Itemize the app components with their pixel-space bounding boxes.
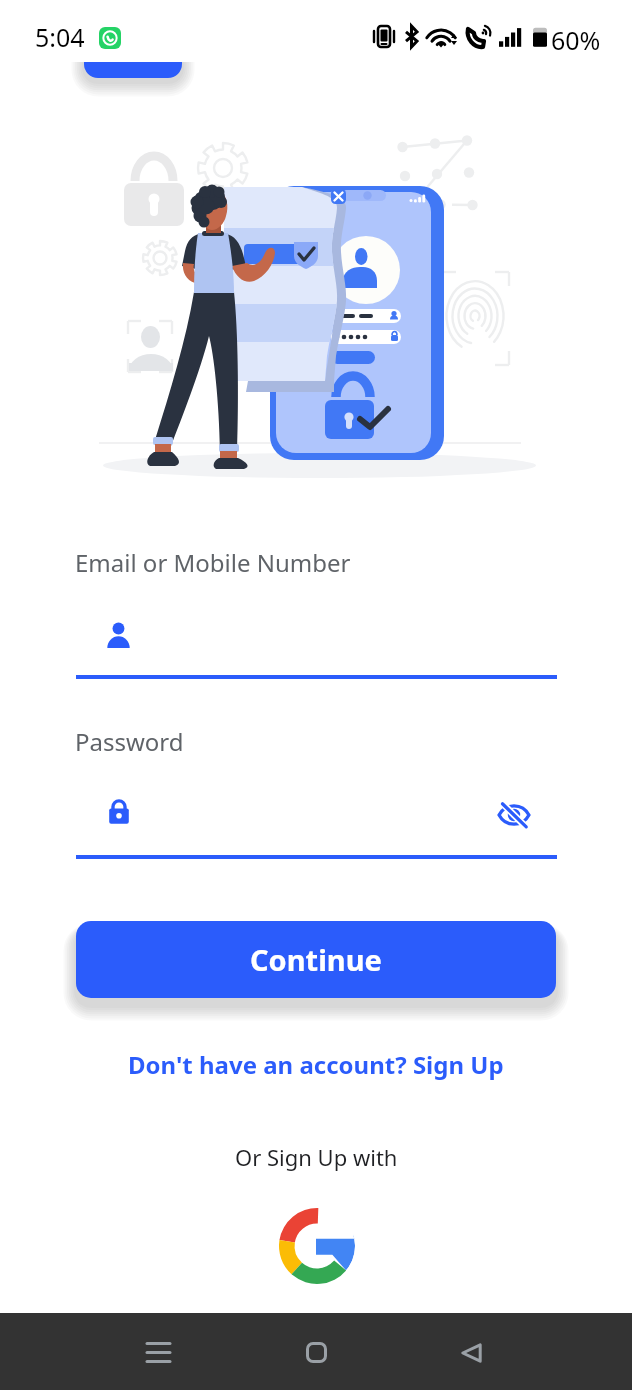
staticText: Don't have an account? Sign Up <box>128 1048 504 1081</box>
staticText: Or Sign Up with <box>235 1142 398 1172</box>
staticText: 5:04 <box>35 20 85 54</box>
staticText: Password <box>75 725 184 758</box>
staticText: Continue <box>250 940 382 979</box>
button[interactable]: Home <box>278 1314 355 1390</box>
staticText: 60% <box>551 23 601 57</box>
button[interactable]: Sign up with Google <box>274 1203 360 1289</box>
button[interactable]: Back <box>433 1314 510 1390</box>
button[interactable]: Don't have an account? Sign Up <box>0 1038 632 1090</box>
button[interactable]: Recent apps <box>120 1314 197 1390</box>
staticText: Email or Mobile Number <box>75 546 351 579</box>
button[interactable] <box>84 30 182 78</box>
button[interactable]: Continue <box>76 921 556 998</box>
button[interactable]: Show password <box>492 793 536 837</box>
